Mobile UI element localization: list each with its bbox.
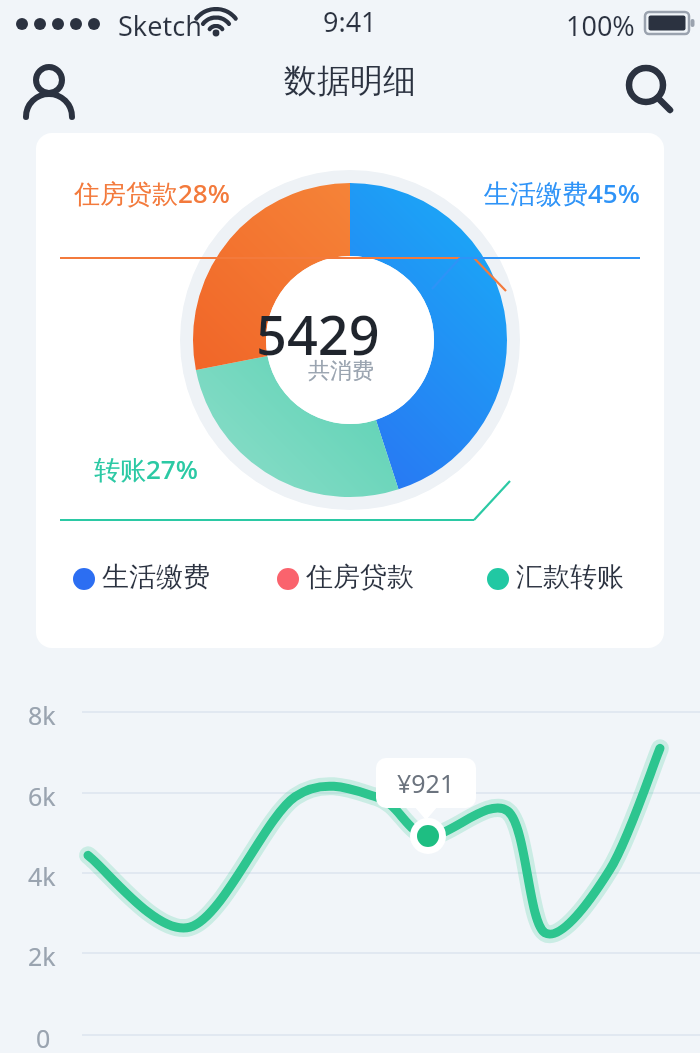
staticText: 生活缴费45% <box>484 175 640 211</box>
button[interactable]: 5429 <box>36 133 664 648</box>
staticText: 4k <box>28 859 56 893</box>
staticText: 住房贷款 <box>306 560 414 594</box>
button[interactable]: Search <box>618 58 678 118</box>
staticText: 6k <box>28 779 56 813</box>
staticText: 共消费 <box>308 357 374 385</box>
staticText: 转账27% <box>94 451 198 487</box>
staticText: 5429 <box>256 297 380 371</box>
staticText: 8k <box>28 698 56 732</box>
staticText: 9:41 <box>323 3 377 40</box>
staticText: 数据明细 <box>284 60 416 102</box>
button[interactable]: ¥921 <box>376 758 476 808</box>
staticText: 住房贷款28% <box>74 175 230 211</box>
staticText: 汇款转账 <box>516 560 624 594</box>
staticText: 生活缴费 <box>102 560 210 594</box>
staticText: Sketch <box>118 7 202 44</box>
staticText: ¥921 <box>397 766 455 800</box>
button[interactable]: Profile <box>20 58 78 116</box>
staticText: 2k <box>28 939 56 973</box>
staticText: 0 <box>36 1021 51 1053</box>
staticText: 100% <box>566 7 635 44</box>
